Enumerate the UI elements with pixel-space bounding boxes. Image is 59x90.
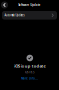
staticText: iOS 18.5 [24,70,35,74]
button[interactable]: Back [0,0,9,10]
staticText: iOS is up to date [14,63,45,69]
staticText: Automatic Updates [4,13,25,17]
button[interactable]: More Info... [21,77,38,80]
button[interactable]: Automatic Updates [2,11,57,20]
staticText: Software Update [18,3,41,7]
staticText: More Info... [21,77,38,80]
